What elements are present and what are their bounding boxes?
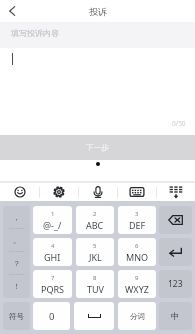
staticText: ！ bbox=[13, 282, 21, 291]
button[interactable]: ？ bbox=[3, 252, 30, 275]
staticText: TUV bbox=[87, 283, 104, 295]
staticText: 。 bbox=[13, 236, 21, 245]
staticText: 123 bbox=[168, 278, 183, 290]
staticText: @-_/ bbox=[43, 219, 62, 231]
staticText: GHI bbox=[44, 251, 61, 263]
staticText: 6 bbox=[135, 242, 139, 250]
staticText: 0/50 bbox=[172, 119, 186, 128]
button[interactable]: Backspace bbox=[159, 206, 192, 234]
staticText: 3 bbox=[135, 210, 139, 218]
button[interactable]: 分词 bbox=[118, 302, 156, 330]
button[interactable]: Keyboard bbox=[117, 183, 156, 201]
button[interactable]: 符号 bbox=[3, 302, 30, 330]
button[interactable]: ， bbox=[3, 206, 30, 229]
staticText: 8 bbox=[93, 274, 97, 282]
staticText: 符号 bbox=[9, 312, 24, 321]
button[interactable]: 1 bbox=[33, 206, 72, 234]
staticText: 分词 bbox=[130, 312, 145, 321]
staticText: PQRS bbox=[41, 283, 65, 295]
button[interactable]: 2 bbox=[76, 206, 114, 234]
staticText: 7 bbox=[51, 274, 55, 282]
staticText: 4 bbox=[51, 242, 55, 250]
button[interactable]: 0 bbox=[33, 302, 70, 330]
button[interactable]: 9 bbox=[118, 270, 156, 298]
staticText: 5 bbox=[93, 242, 97, 250]
button[interactable]: Voice input bbox=[78, 183, 117, 201]
button[interactable]: 3 bbox=[118, 206, 156, 234]
staticText: WXYZ bbox=[125, 283, 149, 295]
staticText: JKL bbox=[89, 251, 102, 263]
button[interactable]: 4 bbox=[33, 238, 72, 266]
button[interactable]: 8 bbox=[76, 270, 114, 298]
staticText: DEF bbox=[129, 219, 146, 231]
button[interactable]: Enter bbox=[159, 238, 192, 266]
button[interactable]: ！ bbox=[3, 275, 30, 298]
staticText: 0 bbox=[49, 310, 55, 323]
button[interactable]: Hide keyboard bbox=[156, 183, 195, 201]
button[interactable]: 6 bbox=[118, 238, 156, 266]
button[interactable]: Settings bbox=[39, 183, 78, 201]
staticText: ， bbox=[13, 213, 21, 222]
staticText: ABC bbox=[86, 219, 104, 231]
button[interactable]: 5 bbox=[76, 238, 114, 266]
button[interactable]: 7 bbox=[33, 270, 72, 298]
staticText: 中 bbox=[171, 311, 180, 322]
button[interactable]: 中 bbox=[159, 302, 192, 330]
staticText: 下一步 bbox=[86, 143, 109, 152]
staticText: 填写投诉内容 bbox=[11, 28, 59, 38]
button[interactable]: 123 bbox=[159, 270, 192, 298]
staticText: 2 bbox=[93, 210, 97, 218]
staticText: 9 bbox=[135, 274, 139, 282]
button[interactable]: Space bbox=[74, 302, 114, 330]
staticText: ？ bbox=[13, 259, 21, 268]
staticText: 投诉 bbox=[89, 6, 107, 17]
button[interactable]: Emoji bbox=[0, 183, 39, 201]
button[interactable]: Back bbox=[0, 0, 24, 22]
staticText: 1 bbox=[51, 210, 55, 218]
staticText: MNO bbox=[126, 251, 149, 263]
